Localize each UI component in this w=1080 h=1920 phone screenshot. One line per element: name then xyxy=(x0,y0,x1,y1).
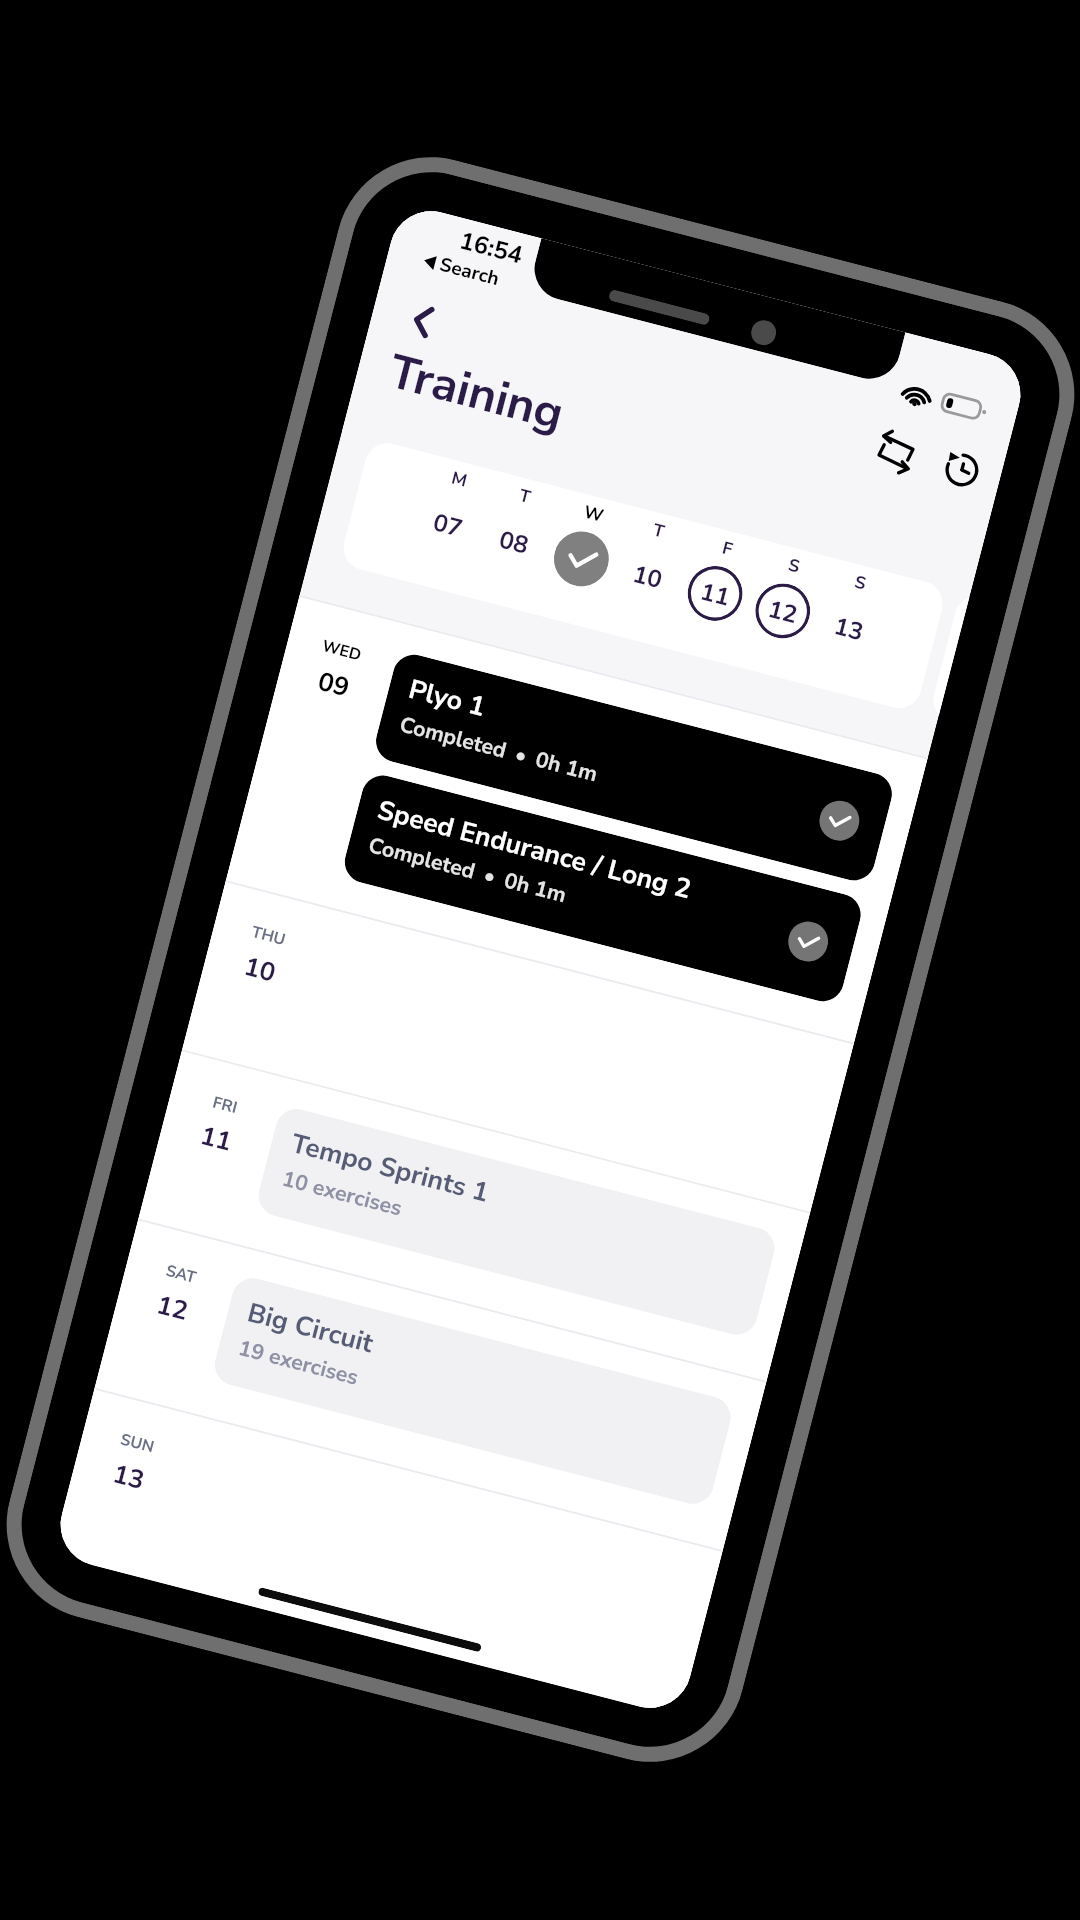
staticText: T xyxy=(651,517,668,543)
staticText: Completed • 0h 1m xyxy=(396,710,602,790)
staticText: THU xyxy=(249,920,289,950)
staticText: FRI xyxy=(211,1091,240,1118)
staticText: 10 xyxy=(629,557,667,597)
staticText: T xyxy=(517,483,534,508)
staticText: 09 xyxy=(314,663,354,705)
staticText: 10 xyxy=(241,948,280,990)
button[interactable]: F xyxy=(671,527,763,638)
button[interactable]: Swap workout xyxy=(861,417,930,486)
button[interactable]: Tempo Sprints 1 xyxy=(254,1104,779,1339)
button[interactable]: Speed Endurance / Long 2 xyxy=(340,771,865,1006)
staticText: Training xyxy=(382,339,571,446)
staticText: Search xyxy=(437,251,503,292)
staticText: SUN xyxy=(118,1428,157,1458)
button[interactable]: T xyxy=(603,510,695,621)
staticText: F xyxy=(720,535,735,560)
staticText: Completed • 0h 1m xyxy=(365,831,571,911)
button[interactable]: History xyxy=(927,434,996,503)
button[interactable]: S xyxy=(805,562,897,673)
staticText: SAT xyxy=(164,1259,200,1288)
staticText: 16:54 xyxy=(456,223,527,272)
button[interactable]: T xyxy=(470,475,561,586)
staticText: 10 exercises xyxy=(279,1164,406,1224)
staticText: WED xyxy=(320,634,364,665)
staticText: Plyo 1 xyxy=(405,671,490,726)
button[interactable]: Plyo 1 xyxy=(371,650,897,885)
staticText: W xyxy=(581,499,607,527)
staticText: Tempo Sprints 1 xyxy=(287,1125,493,1212)
staticText: 13 xyxy=(831,609,868,649)
staticText: 11 xyxy=(697,575,734,614)
button[interactable]: Big Circuit xyxy=(210,1273,735,1509)
staticText: 12 xyxy=(153,1287,193,1328)
staticText: 07 xyxy=(430,505,467,545)
button[interactable]: M xyxy=(404,458,495,569)
staticText: Speed Endurance / Long 2 xyxy=(374,792,695,908)
button[interactable]: W xyxy=(537,493,629,604)
staticText: 08 xyxy=(496,522,533,562)
staticText: S xyxy=(786,552,803,578)
staticText: S xyxy=(852,569,869,595)
button[interactable]: Back xyxy=(378,278,463,363)
staticText: Big Circuit xyxy=(244,1295,378,1362)
staticText: 13 xyxy=(109,1456,149,1497)
staticText: 11 xyxy=(197,1117,236,1159)
button[interactable]: S xyxy=(739,545,831,656)
staticText: 12 xyxy=(765,592,802,632)
staticText: M xyxy=(449,465,471,492)
staticText: 19 exercises xyxy=(235,1333,362,1393)
